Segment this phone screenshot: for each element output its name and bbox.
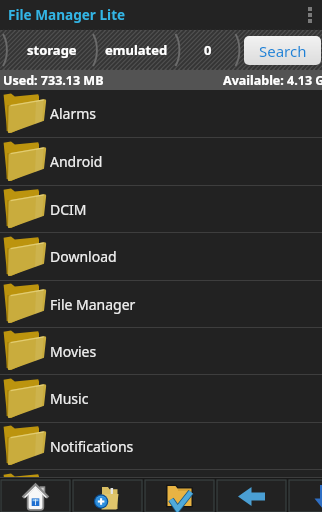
button[interactable]: Notifications	[0, 423, 322, 469]
button[interactable]: Paste	[289, 480, 322, 512]
staticText: storage	[27, 41, 77, 59]
staticText: File Manager Lite	[8, 5, 126, 24]
staticText: Used: 733.13 MB	[3, 72, 104, 89]
staticText: emulated	[105, 41, 168, 59]
staticText: File Manager	[50, 295, 136, 314]
button[interactable]: New folder	[73, 480, 142, 512]
button[interactable]: File Manager	[0, 281, 322, 327]
staticText: Alarms	[50, 104, 96, 123]
staticText: Search	[259, 41, 307, 61]
button[interactable]: Select files	[145, 480, 214, 512]
button[interactable]: Android	[0, 138, 322, 185]
button[interactable]: DCIM	[0, 186, 322, 232]
button[interactable]: More options	[298, 0, 322, 30]
button[interactable]: Movies	[0, 328, 322, 374]
button[interactable]: emulated	[100, 30, 172, 70]
button[interactable]: Music	[0, 375, 322, 422]
staticText: DCIM	[50, 200, 87, 219]
staticText: Download	[50, 247, 117, 266]
button[interactable]: storage	[10, 30, 94, 70]
button[interactable]: 0	[182, 30, 234, 70]
button[interactable]: Home	[1, 480, 70, 512]
staticText: Android	[50, 152, 103, 171]
staticText: Notifications	[50, 437, 134, 456]
staticText: Movies	[50, 342, 97, 361]
button[interactable]: Search	[244, 36, 321, 65]
staticText: Available: 4.13 GB	[223, 72, 322, 89]
button[interactable]: Pictures	[0, 470, 322, 477]
staticText: Music	[50, 389, 89, 408]
button[interactable]: Download	[0, 233, 322, 280]
button[interactable]: Back	[217, 480, 286, 512]
staticText: 0	[204, 41, 212, 59]
button[interactable]: Alarms	[0, 90, 322, 137]
